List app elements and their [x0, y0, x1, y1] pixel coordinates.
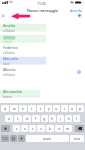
staticText: g — [43, 116, 46, 121]
button[interactable]: spazio — [26, 135, 69, 142]
button[interactable]: e — [19, 105, 27, 112]
staticText: casa — [3, 62, 10, 66]
staticText: Annulla — [70, 8, 83, 13]
button[interactable]: c — [29, 125, 36, 132]
button[interactable]: t — [37, 105, 44, 112]
staticText: p — [79, 106, 82, 111]
button[interactable] — [0, 33, 85, 44]
button[interactable]: Alberto — [0, 66, 85, 77]
button[interactable]: Informazioni — [77, 70, 81, 74]
button[interactable]: Annulla — [68, 8, 85, 13]
button[interactable]: Alessandra — [0, 88, 85, 99]
button[interactable]: 123 — [1, 135, 9, 142]
staticText: ho. — [9, 0, 14, 4]
button[interactable]: z — [13, 125, 20, 132]
button[interactable]: Cancella — [75, 125, 84, 132]
button[interactable]: invio — [70, 135, 84, 142]
staticText: m — [66, 126, 70, 131]
staticText: a — [8, 116, 10, 121]
button[interactable]: Dettatura — [18, 135, 25, 142]
button[interactable]: f — [32, 115, 40, 122]
staticText: 123 — [3, 137, 8, 141]
staticText: f — [35, 116, 37, 121]
button[interactable]: g — [41, 115, 48, 122]
staticText: Manuela — [3, 56, 18, 61]
staticText: o — [71, 106, 74, 111]
staticText: z — [16, 126, 18, 131]
button[interactable]: a — [5, 115, 13, 122]
staticText: Alberto — [3, 67, 16, 72]
button[interactable]: o — [69, 105, 76, 112]
button[interactable]: j — [57, 115, 64, 122]
staticText: k — [68, 116, 70, 121]
button[interactable]: Maiuscole — [1, 125, 10, 132]
staticText: 11:32 — [37, 1, 46, 6]
button[interactable]: Federico — [0, 44, 85, 55]
staticText: cellulare — [3, 73, 15, 77]
staticText: Federico — [3, 45, 18, 50]
button[interactable]: Manuela — [0, 55, 85, 66]
button[interactable]: q — [1, 105, 9, 112]
staticText: Amelia — [3, 23, 15, 28]
button[interactable]: r — [28, 105, 36, 112]
button[interactable]: d — [23, 115, 31, 122]
staticText: r — [31, 106, 33, 111]
button[interactable]: n — [55, 125, 63, 132]
staticText: q — [4, 106, 7, 111]
staticText: u — [55, 106, 58, 111]
staticText: n — [58, 126, 61, 131]
button[interactable]: l — [73, 115, 80, 122]
button[interactable]: w — [10, 105, 18, 112]
button[interactable]: s — [14, 115, 22, 122]
button[interactable]: x — [21, 125, 28, 132]
staticText: cellulare — [3, 29, 15, 33]
staticText: h — [51, 116, 54, 121]
button[interactable]: i — [61, 105, 68, 112]
staticText: l — [76, 116, 77, 121]
button[interactable]: y — [45, 105, 52, 112]
button[interactable]: m — [64, 125, 72, 132]
button[interactable]: h — [49, 115, 56, 122]
staticText: spazio — [43, 137, 52, 141]
button[interactable]: v — [37, 125, 45, 132]
staticText: t — [40, 106, 42, 111]
staticText: invio — [74, 137, 81, 141]
staticText: v — [40, 126, 42, 131]
staticText: d — [26, 116, 29, 121]
staticText: Nuovo messaggio — [27, 8, 59, 13]
button[interactable]: u — [53, 105, 60, 112]
staticText: e — [22, 106, 24, 111]
button[interactable]: k — [65, 115, 72, 122]
button[interactable]: Aggiungi contatto — [77, 13, 82, 18]
staticText: lavoro — [3, 95, 12, 99]
staticText: b — [49, 126, 52, 131]
staticText: y — [48, 106, 50, 111]
button[interactable]: p — [77, 105, 84, 112]
button[interactable]: Emoji — [10, 135, 17, 142]
staticText: c — [32, 126, 34, 131]
staticText: j — [60, 116, 61, 121]
staticText: Alessandra — [3, 89, 22, 94]
staticText: w — [13, 106, 16, 111]
button[interactable]: b — [46, 125, 54, 132]
button[interactable]: Amelia — [0, 22, 85, 33]
staticText: i — [64, 106, 65, 111]
staticText: A: — [2, 13, 6, 18]
staticText: x — [24, 126, 26, 131]
staticText: s — [17, 116, 19, 121]
staticText: cellulare — [3, 51, 15, 55]
